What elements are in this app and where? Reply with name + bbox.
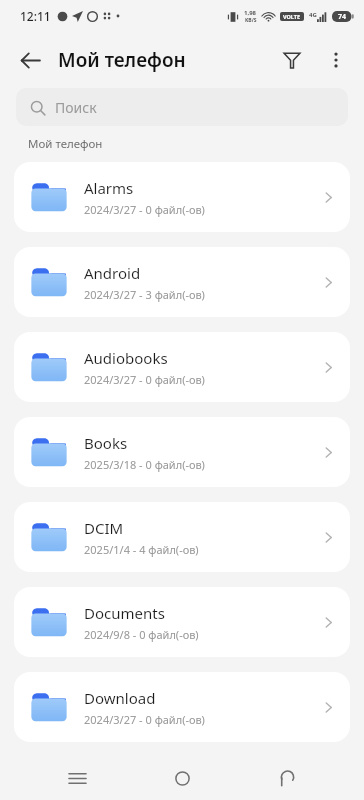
staticText: Books bbox=[84, 433, 128, 453]
button[interactable]: Home bbox=[154, 756, 210, 800]
staticText: DCIM bbox=[84, 518, 124, 538]
staticText: 4G bbox=[309, 11, 317, 19]
staticText: Download bbox=[84, 688, 156, 708]
button[interactable]: Documents bbox=[14, 587, 350, 657]
staticText: 2024/3/27 - 3 файл(-ов) bbox=[84, 287, 205, 302]
button[interactable]: Filter bbox=[270, 38, 314, 82]
staticText: 2024/3/27 - 0 файл(-ов) bbox=[84, 712, 205, 727]
staticText: 2025/3/18 - 0 файл(-ов) bbox=[84, 457, 205, 472]
button[interactable]: Back bbox=[10, 40, 50, 80]
staticText: Мой телефон bbox=[58, 47, 186, 73]
button[interactable]: Back bbox=[259, 756, 315, 800]
button[interactable]: Android bbox=[14, 247, 350, 317]
staticText: 12:11 bbox=[20, 8, 51, 24]
button[interactable]: Recent apps bbox=[49, 756, 105, 800]
staticText: 2024/9/8 - 0 файл(-ов) bbox=[84, 627, 199, 642]
staticText: 2025/1/4 - 4 файл(-ов) bbox=[84, 542, 199, 557]
staticText: 2024/3/27 - 0 файл(-ов) bbox=[84, 372, 205, 387]
button[interactable]: More options bbox=[314, 38, 358, 82]
staticText: Мой телефон bbox=[28, 136, 103, 152]
staticText: Audiobooks bbox=[84, 348, 168, 368]
button[interactable]: Audiobooks bbox=[14, 332, 350, 402]
button[interactable]: Books bbox=[14, 417, 350, 487]
staticText: Documents bbox=[84, 603, 165, 623]
staticText: Android bbox=[84, 263, 141, 283]
staticText: Поиск bbox=[55, 98, 97, 117]
staticText: 1,98 bbox=[244, 9, 257, 17]
staticText: 2024/3/27 - 0 файл(-ов) bbox=[84, 202, 205, 217]
button[interactable]: Alarms bbox=[14, 162, 350, 232]
button[interactable]: Поиск bbox=[16, 88, 348, 126]
staticText: Alarms bbox=[84, 178, 134, 198]
button[interactable]: DCIM bbox=[14, 502, 350, 572]
button[interactable]: Download bbox=[14, 672, 350, 742]
staticText: 74 bbox=[338, 12, 347, 22]
staticText: VOLTE bbox=[283, 13, 301, 20]
staticText: KB/S bbox=[245, 17, 257, 24]
